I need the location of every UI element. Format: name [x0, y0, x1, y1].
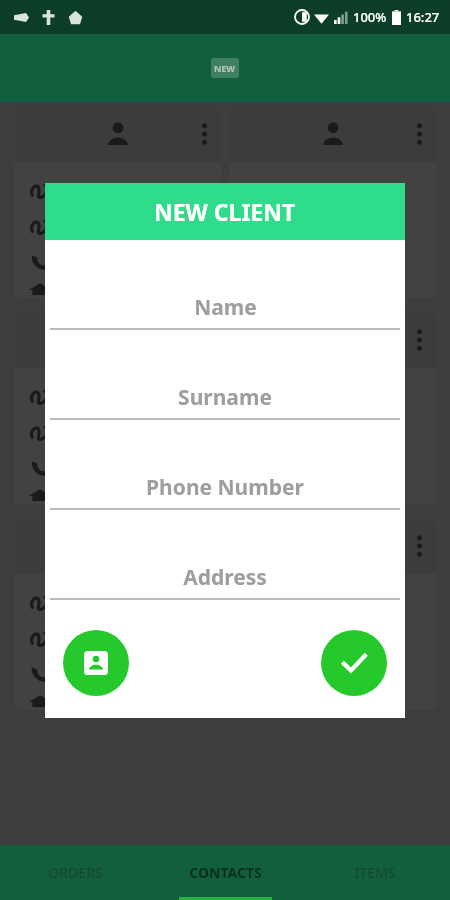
staticText: ORDERS — [48, 863, 103, 882]
button[interactable]: ORDERS — [0, 845, 150, 900]
button[interactable] — [229, 312, 436, 504]
staticText: Aga — [60, 177, 96, 203]
button[interactable]: Aga — [229, 106, 436, 298]
button[interactable] — [14, 518, 221, 710]
button[interactable]: Surname — [45, 352, 405, 418]
button[interactable]: Phone Number — [45, 442, 405, 508]
staticText: Aga — [275, 177, 311, 203]
staticText: Surname — [178, 383, 272, 412]
button[interactable]: CONTACTS — [150, 845, 300, 900]
button[interactable]: New — [211, 58, 239, 78]
staticText: 16:27 — [406, 8, 440, 26]
button[interactable]: Confirm — [321, 630, 387, 696]
button[interactable] — [229, 518, 436, 710]
button[interactable]: Address — [45, 532, 405, 598]
button[interactable]: Name — [45, 262, 405, 328]
button[interactable] — [14, 312, 221, 504]
button[interactable]: Pick contact — [63, 630, 129, 696]
staticText: NEW — [214, 62, 236, 74]
staticText: Name — [194, 293, 257, 322]
staticText: NEW CLIENT — [154, 196, 296, 227]
staticText: ITEMS — [354, 863, 396, 882]
staticText: 100% — [353, 8, 387, 26]
staticText: CONTACTS — [189, 863, 262, 882]
staticText: Phone Number — [146, 473, 304, 502]
staticText: Address — [183, 563, 267, 592]
button[interactable]: Aga — [14, 106, 221, 298]
